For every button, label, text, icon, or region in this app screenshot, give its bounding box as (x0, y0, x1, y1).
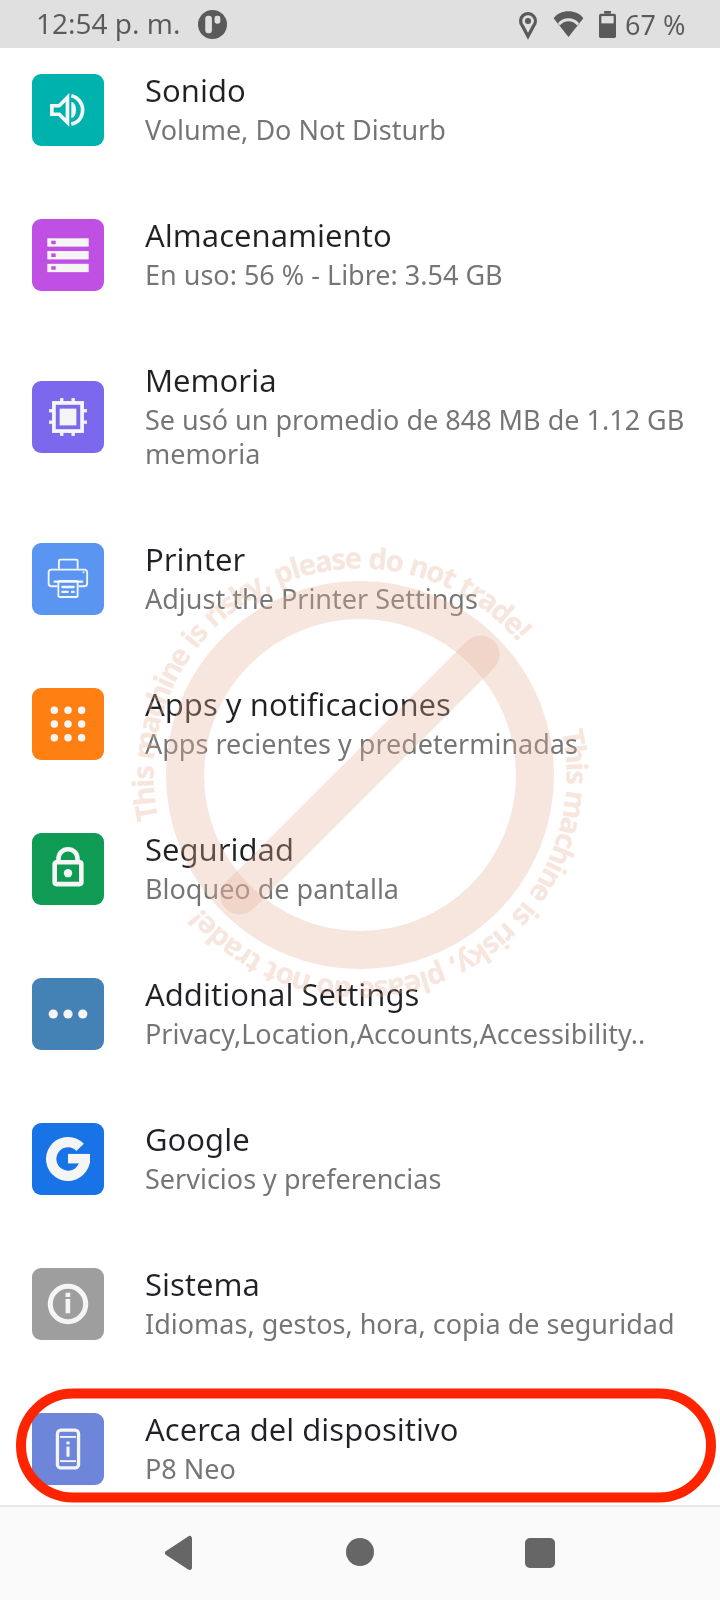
staticText: Sonido (145, 69, 246, 111)
button[interactable]: Printer (0, 506, 720, 651)
button[interactable]: Seguridad (0, 796, 720, 941)
staticText: 67 % (625, 6, 686, 43)
button[interactable]: Google (0, 1086, 720, 1231)
staticText: 12:54 p. m. (36, 4, 181, 42)
staticText: Seguridad (145, 828, 295, 870)
button[interactable]: Sonido (0, 37, 720, 182)
staticText: Almacenamiento (145, 214, 392, 256)
staticText: P8 Neo (145, 1450, 236, 1487)
staticText: Acerca del dispositivo (145, 1408, 459, 1450)
staticText: Adjust the Printer Settings (145, 580, 478, 617)
staticText: Servicios y preferencias (145, 1160, 442, 1197)
staticText: En uso: 56 % - Libre: 3.54 GB (145, 256, 503, 293)
button[interactable]: Memoria (0, 327, 720, 506)
staticText: Additional Settings (145, 973, 420, 1015)
button[interactable]: Additional Settings (0, 941, 720, 1086)
button[interactable]: Sistema (0, 1231, 720, 1376)
staticText: Se usó un promedio de 848 MB de 1.12 GB … (145, 401, 686, 472)
staticText: Apps y notificaciones (145, 683, 451, 725)
staticText: Privacy,Location,Accounts,Accessibility.… (145, 1015, 646, 1052)
button[interactable]: Acerca del dispositivo (0, 1376, 720, 1521)
button[interactable]: Almacenamiento (0, 182, 720, 327)
staticText: Google (145, 1118, 250, 1160)
button[interactable]: Apps y notificaciones (0, 651, 720, 796)
staticText: Sistema (145, 1263, 260, 1305)
button[interactable]: Recents (495, 1507, 585, 1600)
staticText: Volume, Do Not Disturb (145, 111, 446, 148)
staticText: Apps recientes y predeterminadas (145, 725, 578, 762)
staticText: Bloqueo de pantalla (145, 870, 399, 907)
staticText: Printer (145, 538, 246, 580)
staticText: Idiomas, gestos, hora, copia de segurida… (145, 1305, 675, 1342)
button[interactable]: Back (133, 1507, 223, 1600)
button[interactable]: Home (315, 1507, 405, 1600)
staticText: Memoria (145, 359, 277, 401)
